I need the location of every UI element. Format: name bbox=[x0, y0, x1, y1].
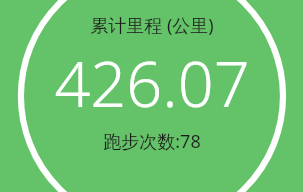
staticText: 跑步次数:78 bbox=[103, 129, 201, 154]
staticText: 累计里程 (公里) bbox=[90, 13, 214, 38]
button[interactable]: Total mileage tile bbox=[0, 0, 303, 192]
staticText: 426.07 bbox=[54, 40, 250, 126]
